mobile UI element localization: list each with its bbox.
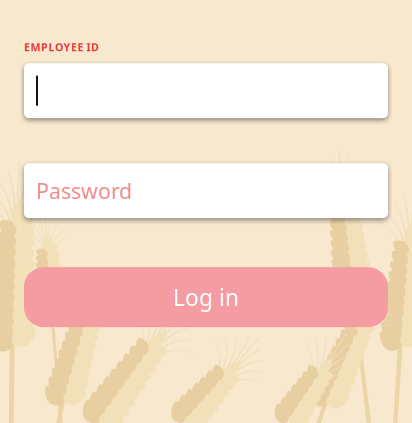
button[interactable] — [24, 63, 388, 118]
staticText: Log in — [173, 282, 239, 312]
staticText: E — [77, 40, 83, 54]
staticText: Y — [63, 40, 70, 54]
staticText: Password — [36, 176, 132, 205]
staticText: P — [41, 40, 48, 54]
staticText: M — [30, 40, 40, 54]
staticText: D — [91, 40, 99, 54]
button[interactable]: Password — [24, 163, 388, 218]
button[interactable]: Log in — [24, 267, 388, 327]
staticText: I — [86, 40, 90, 54]
staticText: E — [71, 40, 77, 54]
staticText: O — [55, 40, 63, 54]
staticText: E — [24, 40, 30, 54]
staticText: L — [48, 40, 54, 54]
